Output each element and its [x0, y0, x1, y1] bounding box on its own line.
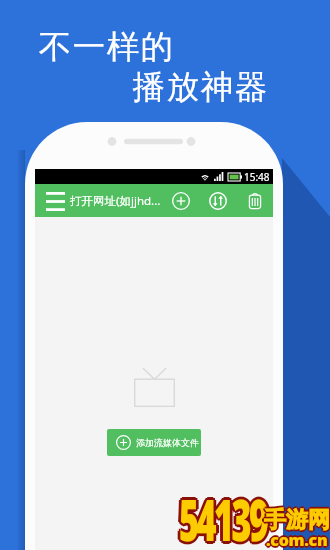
staticText: 打开网址(如jjhd...: [70, 193, 161, 209]
staticText: .com.cn: [265, 530, 327, 550]
staticText: 播放神器: [132, 67, 268, 108]
button[interactable]: Menu: [43, 189, 67, 213]
staticText: 54139: [179, 483, 267, 550]
staticText: 54139: [179, 480, 267, 550]
staticText: .com.cn: [264, 529, 326, 550]
button[interactable]: Add: [168, 188, 194, 214]
staticText: .com.cn: [268, 529, 330, 550]
staticText: 手游网: [264, 506, 330, 534]
button[interactable]: Delete: [242, 188, 268, 214]
staticText: 15:48: [244, 170, 270, 184]
staticText: 54139: [181, 482, 269, 550]
staticText: 手游网: [264, 508, 330, 536]
staticText: .com.cn: [266, 531, 328, 550]
staticText: .com.cn: [266, 529, 328, 550]
staticText: 手游网: [264, 504, 330, 532]
staticText: 54139: [177, 478, 265, 550]
staticText: 54139: [181, 478, 269, 550]
staticText: 手游网: [263, 507, 329, 535]
staticText: 手游网: [262, 506, 328, 534]
staticText: 手游网: [266, 506, 330, 534]
staticText: .com.cn: [267, 528, 329, 550]
staticText: 54139: [177, 482, 265, 550]
staticText: 添加流媒体文件: [136, 437, 199, 448]
staticText: .com.cn: [265, 528, 327, 550]
staticText: 手游网: [263, 505, 329, 533]
staticText: 手游网: [265, 507, 330, 535]
staticText: 手游网: [265, 505, 330, 533]
staticText: 不一样的: [38, 27, 174, 68]
staticText: .com.cn: [267, 530, 329, 550]
staticText: 54139: [176, 480, 264, 550]
staticText: 54139: [182, 480, 270, 550]
button[interactable]: 添加流媒体文件: [107, 429, 201, 456]
staticText: .com.cn: [266, 527, 328, 549]
staticText: 54139: [179, 477, 267, 550]
button[interactable]: Transfer: [205, 188, 231, 214]
